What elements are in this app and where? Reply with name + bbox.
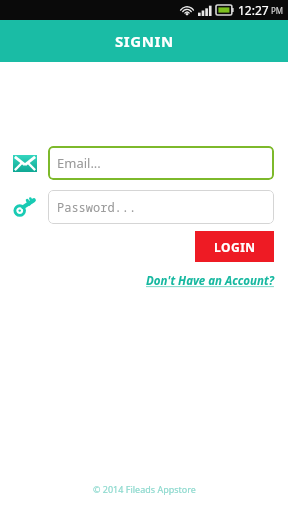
staticText: Don't Have an Account? <box>146 273 274 289</box>
staticText: LOGIN <box>214 239 256 255</box>
staticText: Password... <box>57 199 137 215</box>
other: Email field <box>10 148 40 178</box>
staticText: © 2014 Fileads Appstore <box>93 483 196 495</box>
staticText: 12:27 <box>238 2 269 18</box>
button[interactable]: Don't Have an Account? <box>146 273 274 289</box>
other: Password field <box>10 192 40 222</box>
button[interactable]: Password... <box>48 190 274 224</box>
staticText: SIGNIN <box>115 31 174 51</box>
staticText: PM <box>271 5 284 16</box>
staticText: Email... <box>57 154 101 172</box>
button[interactable]: Email... <box>48 146 274 180</box>
button[interactable]: LOGIN <box>195 231 274 262</box>
